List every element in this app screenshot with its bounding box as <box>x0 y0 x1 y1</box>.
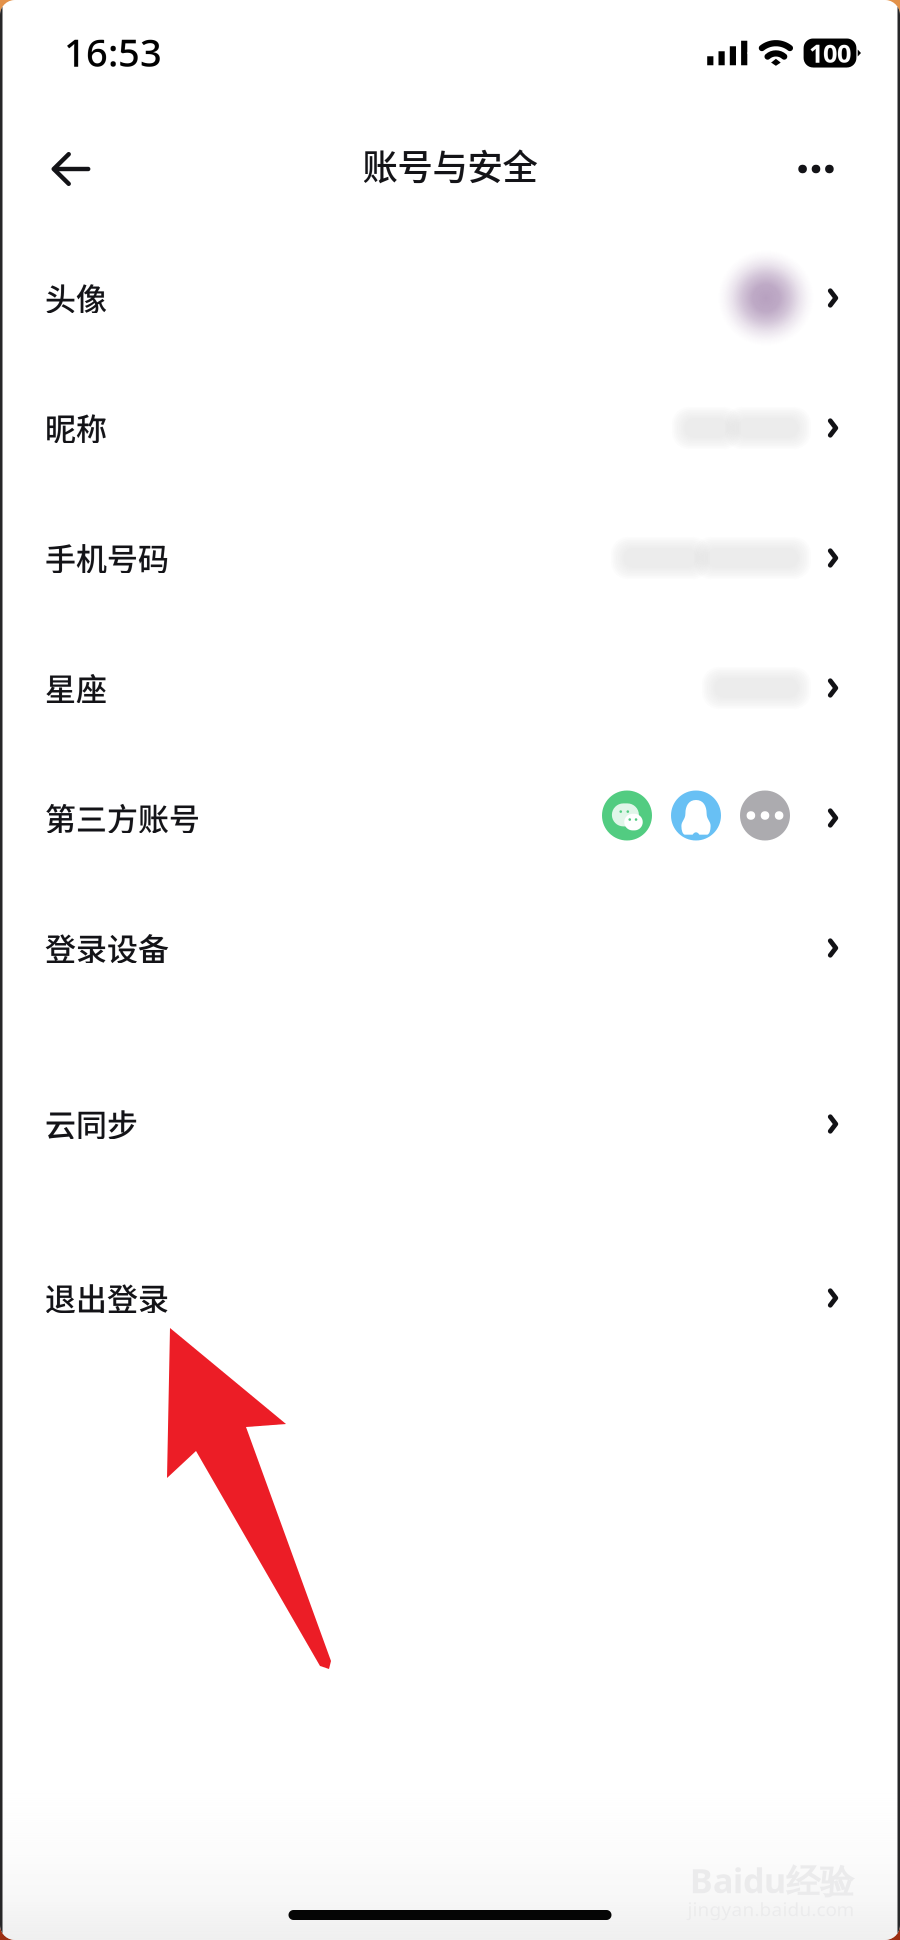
button[interactable]: 更多 <box>776 124 856 214</box>
staticText: 登录设备 <box>45 925 169 969</box>
button[interactable]: 昵称 <box>0 363 900 493</box>
staticText: 100 <box>809 36 851 70</box>
staticText: 云同步 <box>45 1101 138 1145</box>
staticText: 手机号码 <box>45 535 169 579</box>
staticText: 星座 <box>45 665 107 709</box>
staticText: 账号与安全 <box>362 139 537 190</box>
button[interactable]: 第三方账号 <box>0 753 900 883</box>
staticText: 昵称 <box>45 405 107 449</box>
button[interactable]: 登录设备 <box>0 883 900 1013</box>
staticText: 第三方账号 <box>45 795 200 839</box>
staticText: jingyan.baidu.com <box>687 1896 854 1922</box>
button[interactable]: 返回 <box>31 124 111 214</box>
button[interactable]: 头像 <box>0 233 900 363</box>
button[interactable]: 云同步 <box>0 1059 900 1189</box>
staticText: 头像 <box>45 275 107 319</box>
staticText: Baidu经验 <box>690 1857 854 1903</box>
staticText: 16:53 <box>64 26 162 78</box>
button[interactable]: 手机号码 <box>0 493 900 623</box>
staticText: 退出登录 <box>45 1275 169 1319</box>
button[interactable]: 退出登录 <box>0 1233 900 1363</box>
button[interactable]: 星座 <box>0 623 900 753</box>
